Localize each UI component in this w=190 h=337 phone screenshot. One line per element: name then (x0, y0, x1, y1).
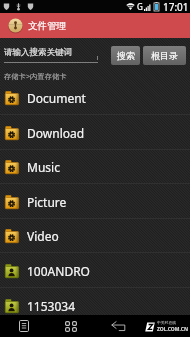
button[interactable]: Document (0, 81, 190, 115)
staticText: Download (27, 125, 85, 141)
staticText: 请输入搜索关键词 (4, 47, 72, 58)
button[interactable]: Recent apps (0, 315, 47, 337)
button[interactable]: 请输入搜索关键词 (4, 47, 98, 58)
staticText: G (137, 1, 143, 12)
button[interactable]: 根目录 (143, 46, 186, 65)
staticText: 存储卡>内置存储卡 (4, 71, 67, 81)
staticText: Music (27, 159, 60, 175)
button[interactable]: Video (0, 219, 190, 253)
staticText: 1153034 (27, 298, 76, 314)
button[interactable]: Music (0, 150, 190, 184)
staticText: 根目录 (151, 50, 178, 61)
button[interactable]: Picture (0, 185, 190, 219)
staticText: Picture (27, 194, 67, 210)
button[interactable]: Back (94, 315, 142, 337)
button[interactable]: 100ANDRO (0, 254, 190, 288)
staticText: 搜索 (117, 50, 135, 61)
staticText: 中关村在线 (157, 320, 176, 325)
staticText: 文件管理 (28, 20, 66, 32)
button[interactable]: Download (0, 116, 190, 150)
staticText: Document (27, 90, 86, 106)
staticText: Video (27, 228, 59, 244)
button[interactable]: 1153034 (0, 289, 190, 323)
button[interactable]: 搜索 (111, 46, 140, 65)
staticText: ZOL.COM.CN (157, 326, 188, 333)
button[interactable]: All apps (47, 315, 94, 337)
staticText: 100ANDRO (27, 263, 90, 279)
staticText: 17:01 (163, 0, 189, 13)
